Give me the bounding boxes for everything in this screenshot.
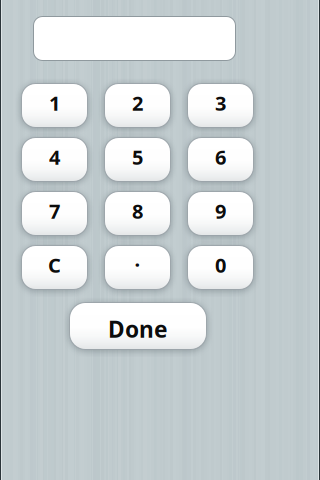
button[interactable]: Done [69,302,206,349]
button[interactable]: 3 [187,83,253,127]
button[interactable]: 7 [21,191,87,235]
staticText: 9 [215,198,226,224]
staticText: C [48,252,61,278]
button[interactable]: 4 [21,137,87,181]
staticText: 8 [132,198,143,224]
staticText: 5 [132,144,143,170]
staticText: 3 [215,90,226,116]
staticText: 0 [215,252,226,278]
button[interactable]: 9 [187,191,253,235]
staticText: 7 [49,198,60,224]
staticText: . [134,246,140,272]
staticText: 1 [49,90,60,116]
staticText: 2 [132,90,143,116]
staticText: Done [108,314,168,344]
button[interactable]: 5 [104,137,170,181]
button[interactable]: 1 [21,83,87,127]
button[interactable]: 6 [187,137,253,181]
staticText: 4 [49,144,60,170]
button[interactable]: 2 [104,83,170,127]
button[interactable]: 8 [104,191,170,235]
button[interactable]: . [104,245,170,289]
staticText: 6 [215,144,226,170]
button[interactable]: C [21,245,87,289]
button[interactable]: 0 [187,245,253,289]
